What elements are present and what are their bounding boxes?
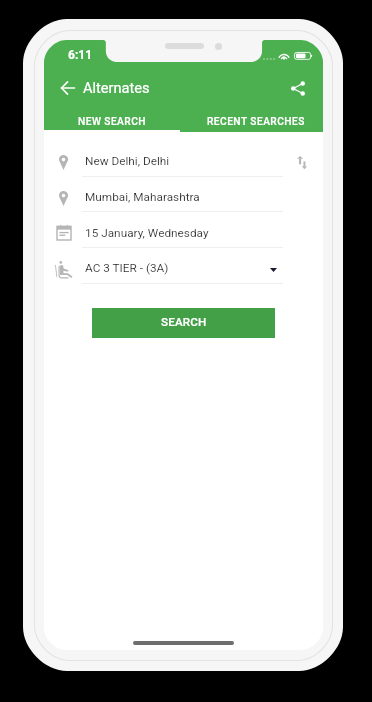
staticText: NEW SEARCH	[78, 116, 146, 128]
button[interactable]: RECENT SEARCHES	[180, 108, 323, 132]
button[interactable]: Select class	[263, 260, 283, 280]
staticText: RECENT SEARCHES	[207, 116, 305, 128]
button[interactable]: NEW SEARCH	[44, 108, 180, 132]
staticText: New Delhi, Delhi	[85, 154, 170, 168]
button[interactable]: Swap stations	[292, 151, 312, 174]
staticText: AC 3 TIER - (3A)	[85, 261, 169, 275]
staticText: Mumbai, Maharashtra	[85, 190, 200, 204]
button[interactable]: Share	[287, 77, 309, 99]
staticText: SEARCH	[161, 315, 207, 329]
staticText: 15 January, Wednesday	[85, 226, 209, 240]
button[interactable]: SEARCH	[92, 308, 275, 338]
staticText: Alternates	[83, 79, 150, 96]
staticText: 6:11	[68, 48, 93, 62]
button[interactable]: Back	[57, 77, 79, 99]
